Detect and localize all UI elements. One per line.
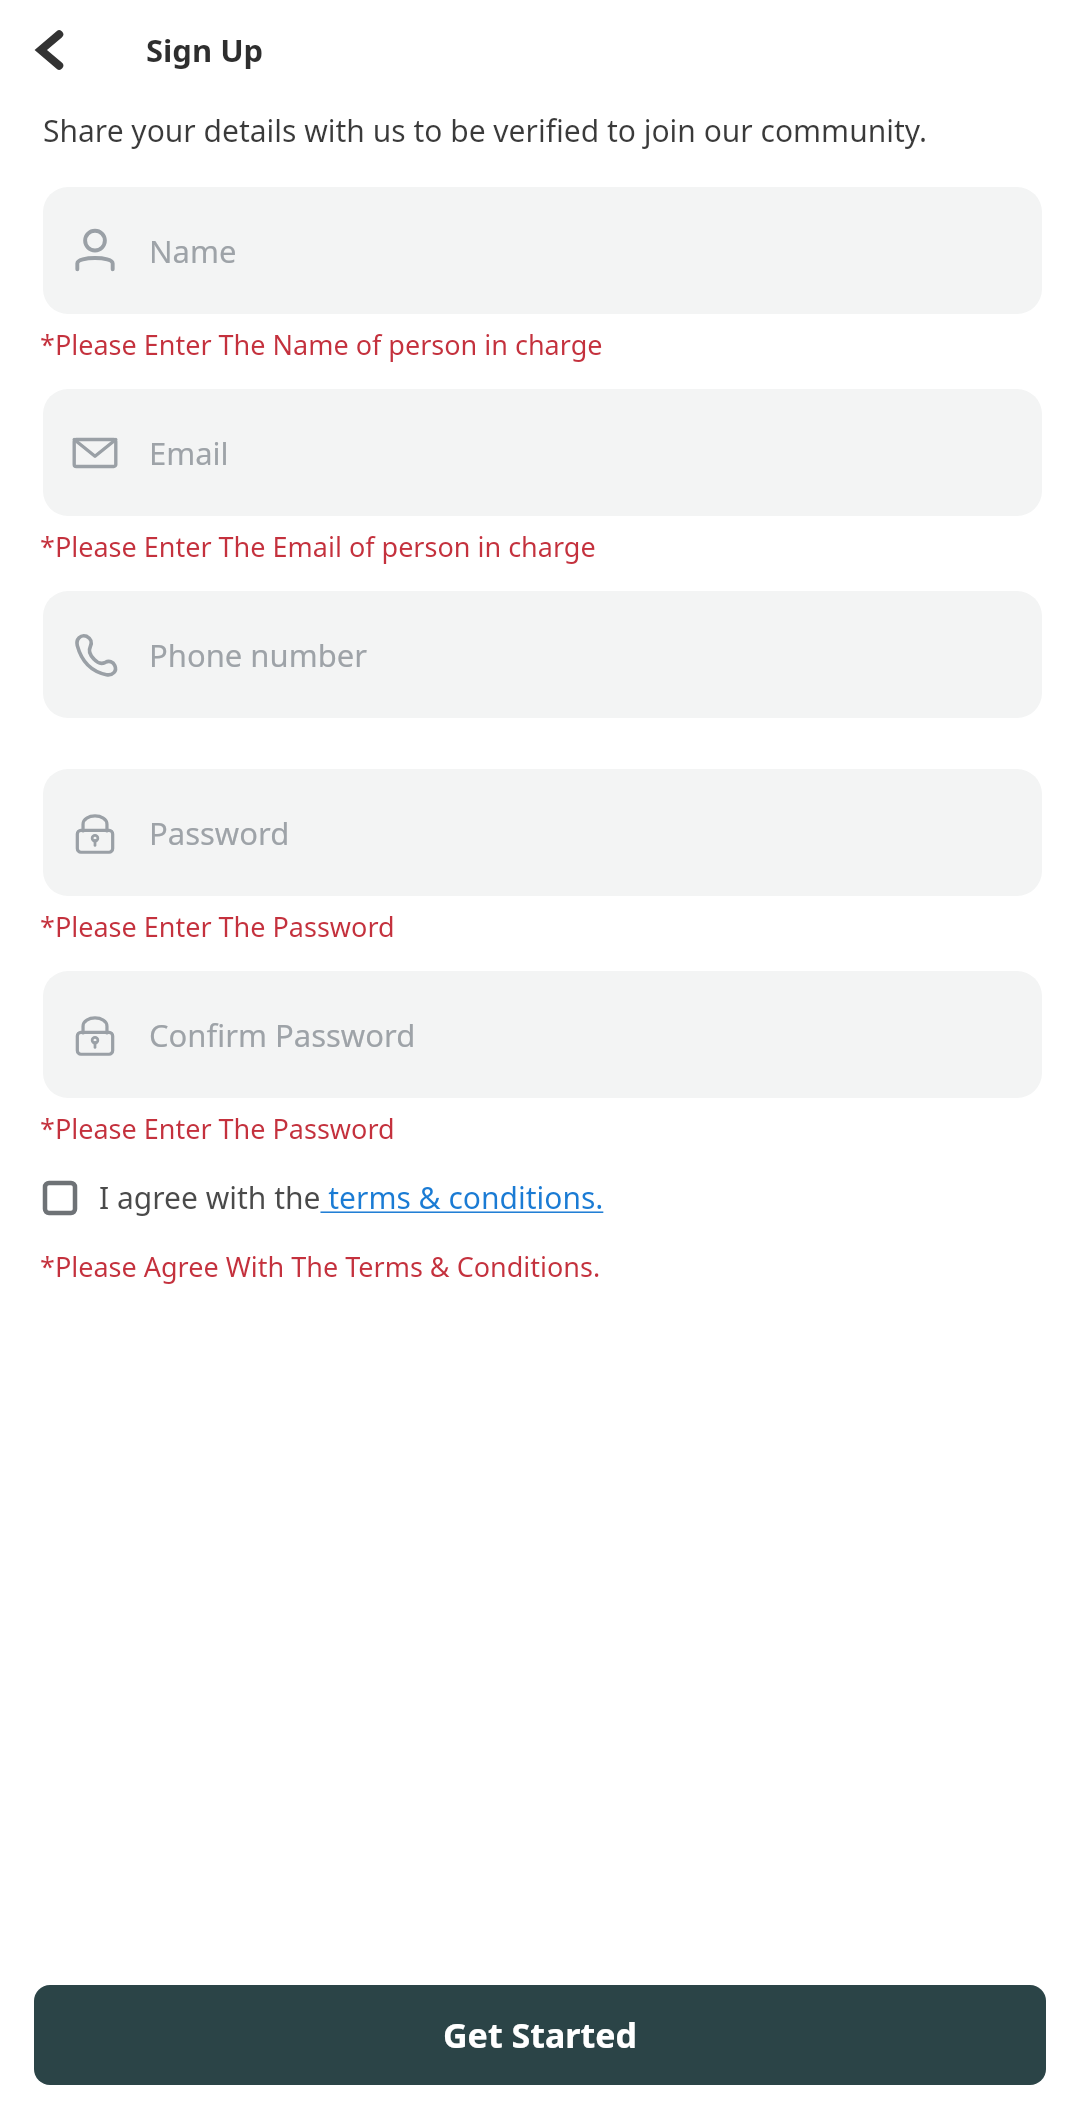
button[interactable]: Password xyxy=(43,769,1042,896)
button[interactable]: Email xyxy=(43,389,1042,516)
staticText: Name xyxy=(149,230,237,272)
staticText: *Please Enter The Name of person in char… xyxy=(40,326,603,363)
staticText: *Please Enter The Password xyxy=(40,908,395,945)
staticText: I agree with the terms & conditions. xyxy=(99,1177,604,1218)
staticText: Phone number xyxy=(149,634,368,676)
staticText: *Please Enter The Password xyxy=(40,1110,395,1147)
button[interactable]: I agree with the terms & conditions. xyxy=(43,1177,1040,1218)
staticText: Email xyxy=(149,432,229,474)
staticText: *Please Enter The Email of person in cha… xyxy=(40,528,596,565)
staticText: Password xyxy=(149,812,290,854)
button[interactable]: Phone number xyxy=(43,591,1042,718)
staticText: Confirm Password xyxy=(149,1014,416,1056)
button[interactable]: Confirm Password xyxy=(43,971,1042,1098)
button[interactable]: Back xyxy=(14,14,86,86)
staticText: Share your details with us to be verifie… xyxy=(43,110,927,151)
button[interactable]: Get Started xyxy=(34,1985,1046,2085)
staticText: *Please Agree With The Terms & Condition… xyxy=(40,1248,601,1285)
staticText: Get Started xyxy=(443,2012,638,2058)
button[interactable]: Name xyxy=(43,187,1042,314)
staticText: Sign Up xyxy=(146,29,264,71)
